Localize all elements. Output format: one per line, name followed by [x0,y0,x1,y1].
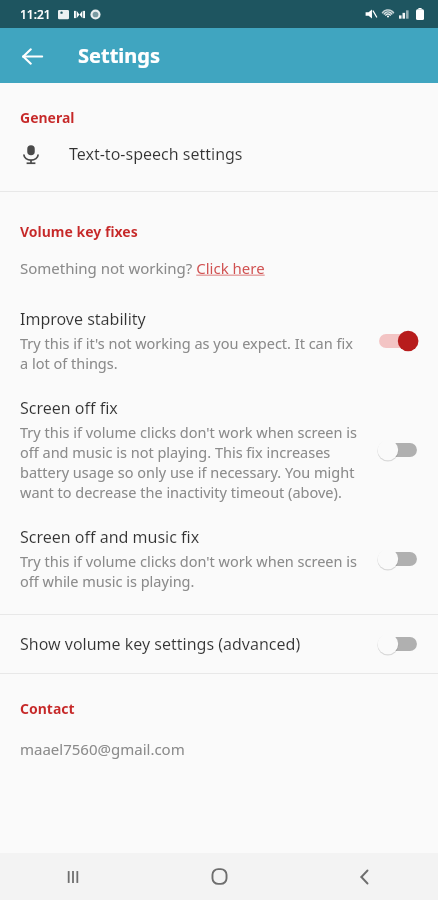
button[interactable]: Screen off and music fix [0,502,438,591]
button[interactable]: Screen off fix [0,373,438,502]
staticText: Settings [78,42,160,69]
button[interactable]: Back [292,853,438,900]
staticText: Volume key fixes [20,222,138,241]
button[interactable]: Improve stability [0,278,438,373]
button[interactable]: Screen off and music fix [368,539,428,579]
staticText: maael7560@gmail.com [20,739,185,759]
staticText: Screen off fix [20,397,118,419]
button[interactable]: Something not working? Click here [0,258,438,278]
button[interactable]: Improve stability [368,321,428,361]
button[interactable]: Screen off fix [368,430,428,470]
staticText: Show volume key settings (advanced) [20,633,368,655]
staticText: Improve stability [20,308,146,330]
staticText: Try this if it's not working as you expe… [20,333,360,373]
staticText: 11:21 [20,6,51,22]
button[interactable]: Recent apps [0,853,146,900]
staticText: Something not working? Click here [20,258,265,278]
button[interactable]: Home [146,853,292,900]
staticText: Try this if volume clicks don't work whe… [20,422,360,502]
button[interactable]: Text-to-speech settings [0,127,438,180]
staticText: Try this if volume clicks don't work whe… [20,551,360,591]
button[interactable]: Back [12,36,52,76]
staticText: Text-to-speech settings [69,143,243,165]
staticText: Screen off and music fix [20,526,200,548]
staticText: Contact [20,699,75,718]
button[interactable]: Show volume key settings [368,624,428,664]
button[interactable]: Show volume key settings (advanced) [0,615,438,673]
staticText: General [20,108,75,127]
